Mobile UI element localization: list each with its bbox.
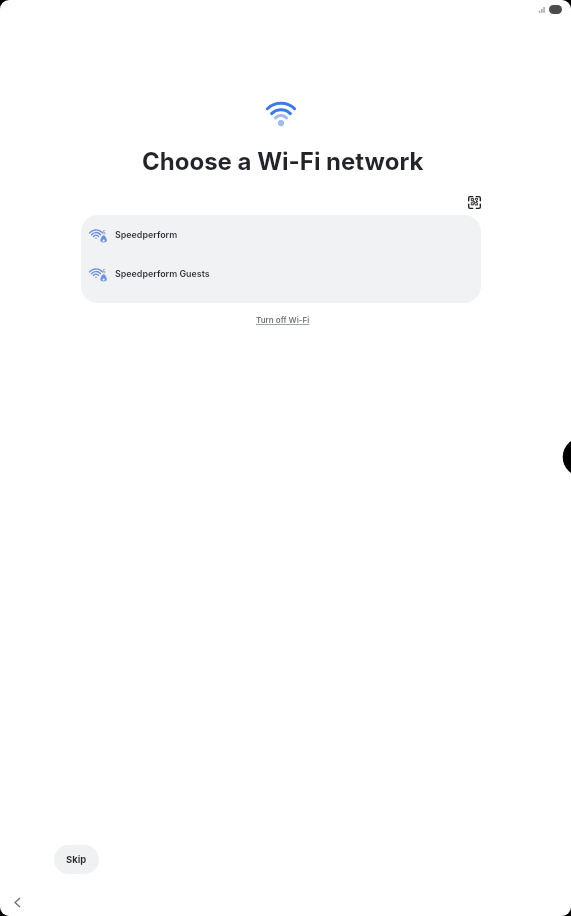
button[interactable]: Skip <box>54 845 99 874</box>
staticText: Choose a Wi-Fi network <box>142 147 424 176</box>
button[interactable]: Back <box>7 892 27 912</box>
staticText: Speedperform <box>115 229 178 240</box>
button[interactable]: Scan QR code <box>462 190 486 214</box>
button[interactable]: Speedperform <box>81 216 481 255</box>
staticText: Speedperform Guests <box>115 268 210 279</box>
button[interactable]: Turn off Wi-Fi <box>250 311 316 329</box>
staticText: Skip <box>66 854 87 865</box>
button[interactable]: Speedperform Guests <box>81 255 481 294</box>
staticText: Turn off Wi-Fi <box>256 315 310 325</box>
